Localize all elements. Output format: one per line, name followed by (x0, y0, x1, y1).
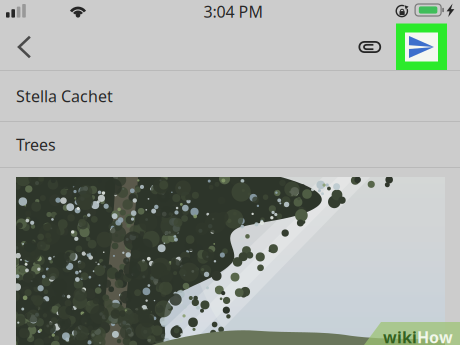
button[interactable]: Trees (0, 122, 460, 167)
button[interactable]: Attach file (353, 25, 381, 69)
button[interactable]: Send (396, 23, 447, 70)
staticText: Stella Cachet (16, 85, 113, 107)
button[interactable]: Back (8, 25, 41, 69)
staticText: 3:04 PM (203, 1, 263, 22)
staticText: How (417, 326, 453, 345)
staticText: wiki (383, 326, 417, 345)
button[interactable]: Stella Cachet (0, 71, 460, 121)
staticText: Trees (16, 134, 56, 155)
